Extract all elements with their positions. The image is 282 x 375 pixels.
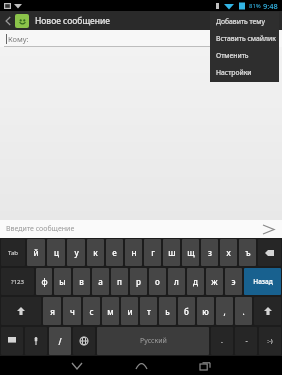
button[interactable]: з — [201, 239, 218, 266]
staticText: ъ — [245, 247, 251, 258]
button[interactable]: с — [83, 297, 100, 325]
button[interactable]: а — [92, 268, 109, 295]
button[interactable]: Home — [121, 356, 161, 375]
staticText: Введите сообщение — [6, 224, 260, 234]
staticText: :-) — [267, 337, 273, 345]
button[interactable]: ф — [36, 268, 52, 295]
staticText: э — [231, 276, 236, 287]
button[interactable]: Tab — [1, 239, 25, 266]
staticText: ю — [202, 306, 209, 317]
staticText: т — [147, 306, 151, 317]
button[interactable]: Send — [260, 221, 276, 237]
button[interactable]: б — [178, 297, 195, 325]
button[interactable]: у — [67, 239, 85, 266]
staticText: о — [155, 276, 160, 287]
staticText: с — [89, 306, 94, 317]
staticText: , — [223, 306, 226, 317]
button[interactable]: Back — [57, 356, 97, 375]
button[interactable]: Voice input — [25, 327, 47, 355]
button[interactable]: - — [235, 327, 257, 355]
staticText: ж — [211, 276, 218, 287]
button[interactable]: More options — [259, 12, 277, 30]
button[interactable]: Shift — [1, 297, 41, 325]
staticText: ?123 — [11, 278, 24, 286]
staticText: у — [74, 247, 79, 258]
staticText: ф — [41, 276, 48, 287]
button[interactable]: , — [216, 297, 233, 325]
staticText: . — [242, 306, 245, 317]
button[interactable]: Отменить — [210, 47, 279, 64]
button[interactable]: м — [102, 297, 119, 325]
button[interactable]: т — [140, 297, 157, 325]
button[interactable]: х — [220, 239, 237, 266]
staticText: ь — [165, 306, 170, 317]
button[interactable]: к — [87, 239, 104, 266]
staticText: Новое сообщение — [35, 15, 239, 27]
staticText: ы — [59, 276, 66, 287]
button[interactable]: . — [211, 327, 233, 355]
button[interactable]: Backspace — [258, 239, 281, 266]
staticText: и — [127, 306, 133, 317]
staticText: щ — [187, 247, 195, 258]
staticText: д — [193, 276, 198, 287]
staticText: 81% — [249, 2, 261, 10]
button[interactable]: Добавить тему — [210, 13, 279, 30]
button[interactable]: я — [43, 297, 61, 325]
button[interactable]: в — [73, 268, 90, 295]
staticText: Русский — [140, 336, 167, 346]
staticText: н — [131, 247, 137, 258]
staticText: я — [50, 306, 55, 317]
button[interactable]: л — [168, 268, 185, 295]
button[interactable]: э — [225, 268, 242, 295]
staticText: 9:48 — [263, 1, 278, 11]
staticText: м — [107, 306, 114, 317]
staticText: х — [226, 247, 231, 258]
button[interactable]: о — [149, 268, 166, 295]
staticText: ц — [54, 247, 59, 258]
button[interactable]: д — [187, 268, 204, 295]
button[interactable]: Назад — [244, 268, 281, 295]
staticText: г — [151, 247, 155, 258]
staticText: Кому: — [8, 34, 29, 44]
staticText: Добавить тему — [216, 17, 266, 26]
button[interactable]: Вставить смайлик — [210, 30, 279, 47]
staticText: Настройки — [216, 68, 252, 77]
staticText: к — [93, 247, 98, 258]
button[interactable]: й — [27, 239, 45, 266]
button[interactable]: г — [144, 239, 161, 266]
staticText: з — [208, 247, 212, 258]
button[interactable]: ш — [163, 239, 180, 266]
staticText: ш — [168, 247, 176, 258]
button[interactable]: :-) — [259, 327, 281, 355]
button[interactable]: Change language — [73, 327, 95, 355]
button[interactable]: Attach — [239, 11, 259, 30]
staticText: в — [79, 276, 84, 287]
button[interactable]: Shift — [254, 297, 281, 325]
button[interactable]: н — [125, 239, 142, 266]
button[interactable]: Русский — [97, 327, 209, 355]
button[interactable]: ц — [47, 239, 65, 266]
button[interactable]: Hide keyboard — [1, 327, 23, 355]
button[interactable]: п — [111, 268, 128, 295]
button[interactable]: ж — [206, 268, 223, 295]
button[interactable]: ч — [63, 297, 81, 325]
staticText: б — [184, 306, 189, 317]
staticText: р — [136, 276, 141, 287]
button[interactable]: . — [235, 297, 252, 325]
button[interactable]: Настройки — [210, 64, 279, 81]
button[interactable]: ъ — [239, 239, 256, 266]
staticText: Назад — [253, 277, 273, 286]
button[interactable]: Recents — [185, 356, 225, 375]
staticText: п — [117, 276, 122, 287]
staticText: / — [58, 336, 62, 347]
button[interactable]: ь — [159, 297, 176, 325]
button[interactable]: ю — [197, 297, 214, 325]
staticText: Вставить смайлик — [216, 34, 276, 43]
button[interactable]: е — [106, 239, 123, 266]
button[interactable]: / — [49, 327, 71, 355]
button[interactable]: щ — [182, 239, 199, 266]
button[interactable]: ы — [54, 268, 71, 295]
button[interactable]: и — [121, 297, 138, 325]
button[interactable]: р — [130, 268, 147, 295]
button[interactable]: ?123 — [1, 268, 34, 295]
